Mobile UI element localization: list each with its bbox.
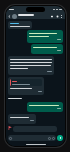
other: Camera [52, 137, 55, 140]
button[interactable] [31, 44, 63, 54]
button[interactable] [8, 56, 54, 75]
button[interactable]: Flagged [8, 126, 12, 130]
button[interactable]: Attach [8, 135, 56, 141]
button[interactable] [8, 97, 22, 100]
button[interactable]: Voice call [56, 15, 59, 18]
button[interactable] [27, 102, 63, 112]
button[interactable] [27, 30, 63, 43]
button[interactable]: Send voice message [57, 135, 63, 141]
other: Attach [48, 137, 51, 140]
button[interactable] [8, 114, 36, 124]
button[interactable]: Back [8, 15, 11, 18]
button[interactable] [12, 14, 17, 19]
button[interactable]: More options [60, 15, 63, 18]
button[interactable]: Video call [51, 15, 54, 18]
button[interactable] [8, 77, 44, 95]
button[interactable] [8, 21, 32, 29]
